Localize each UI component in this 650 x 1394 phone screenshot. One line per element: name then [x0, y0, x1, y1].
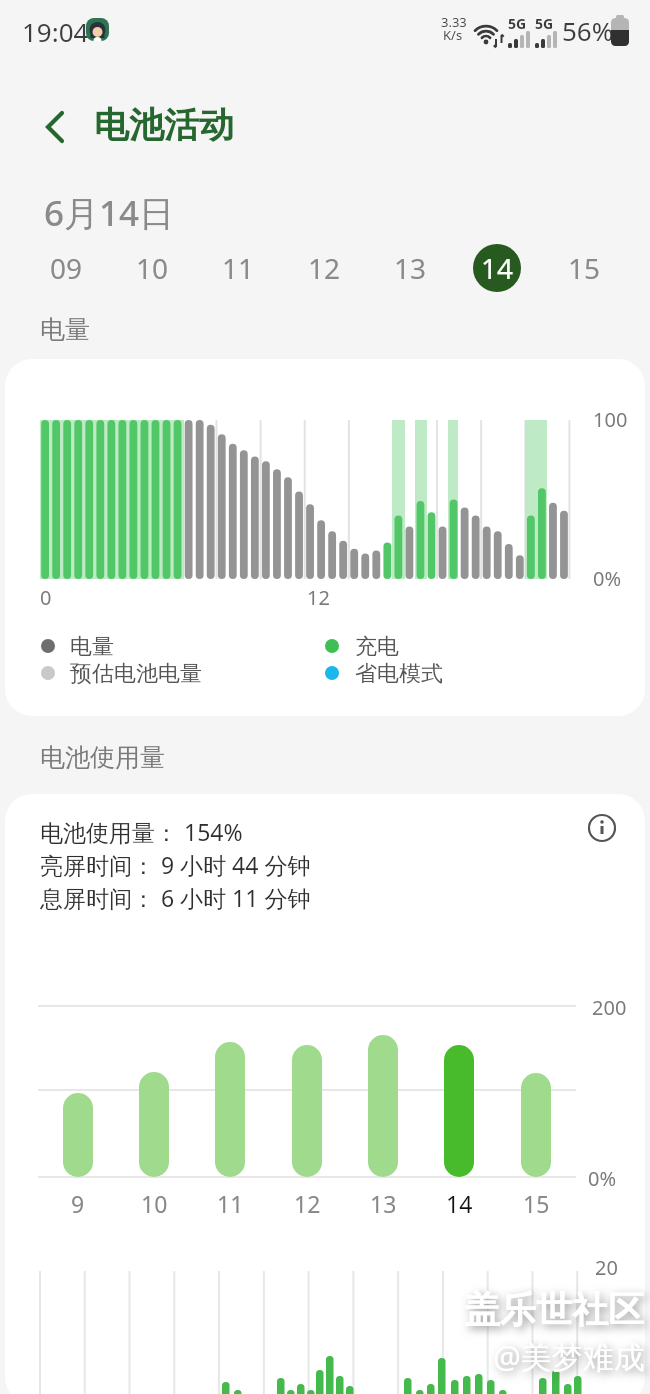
button[interactable]: 11 [208, 244, 268, 292]
staticText: 电池活动 [94, 103, 234, 147]
staticText: 电量 [40, 314, 90, 345]
staticText: 息屏时间： 6 小时 11 分钟 [40, 882, 311, 913]
staticText: 13 [370, 1188, 397, 1219]
button[interactable]: 14 [473, 244, 521, 292]
button[interactable] [585, 811, 619, 845]
staticText: 11 [217, 1188, 244, 1219]
staticText: 电池使用量 [40, 742, 165, 773]
staticText: 15 [568, 249, 601, 287]
staticText: 0 [40, 584, 52, 611]
staticText: 0% [593, 565, 622, 592]
button[interactable] [34, 104, 78, 148]
staticText: 电池使用量： 154% [40, 816, 243, 847]
staticText: 19:04 [22, 14, 89, 49]
staticText: 省电模式 [355, 660, 443, 688]
staticText: 14 [446, 1188, 473, 1219]
staticText: 12 [307, 584, 330, 611]
staticText: 11 [222, 249, 255, 287]
staticText: @美梦难成 [493, 1335, 645, 1377]
button[interactable]: 13 [380, 244, 440, 292]
staticText: 14 [481, 249, 514, 287]
button[interactable]: 12 [294, 244, 354, 292]
button[interactable]: 10 [122, 244, 182, 292]
staticText: 3.33 [441, 13, 467, 31]
staticText: 13 [394, 249, 427, 287]
staticText: 0% [588, 1165, 617, 1192]
staticText: 5G [508, 14, 527, 33]
staticText: 12 [308, 249, 341, 287]
staticText: 9 [71, 1188, 85, 1219]
staticText: 电量 [70, 633, 114, 661]
staticText: 20 [595, 1254, 618, 1281]
staticText: 亮屏时间： 9 小时 44 分钟 [40, 849, 311, 880]
staticText: 预估电池电量 [70, 660, 202, 688]
staticText: 充电 [355, 633, 399, 661]
staticText: 5G [535, 14, 554, 33]
staticText: 10 [136, 249, 169, 287]
staticText: K/s [443, 26, 463, 44]
button[interactable]: 09 [36, 244, 96, 292]
staticText: 6月14日 [44, 189, 175, 237]
staticText: 12 [294, 1188, 321, 1219]
staticText: 100 [593, 406, 628, 433]
staticText: 10 [141, 1188, 168, 1219]
staticText: 15 [523, 1188, 550, 1219]
staticText: 盖乐世社区 [464, 1287, 644, 1332]
button[interactable]: 15 [554, 244, 614, 292]
staticText: 200 [592, 994, 627, 1021]
staticText: 09 [50, 249, 83, 287]
staticText: 56% [562, 13, 614, 48]
